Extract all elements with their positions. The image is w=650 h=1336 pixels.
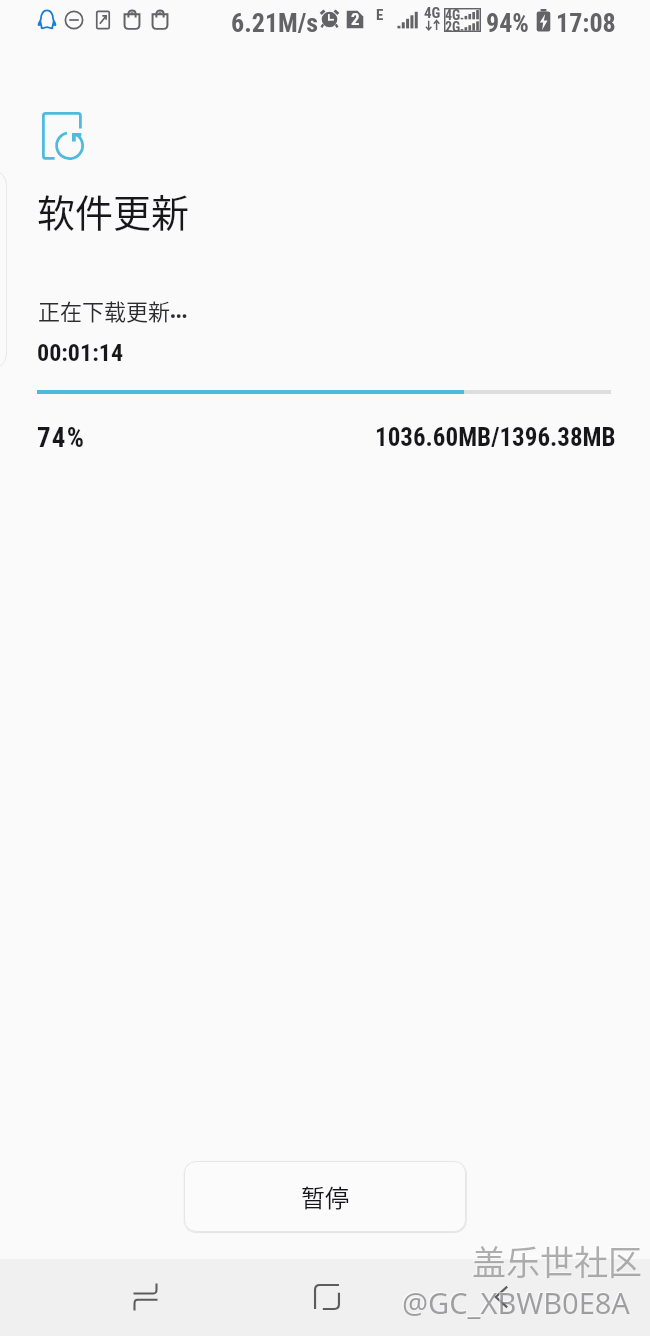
staticText: 暂停 [301, 1179, 349, 1214]
staticText: 17:08 [556, 8, 616, 38]
staticText: 6.21M/s [231, 8, 319, 38]
staticText: E [376, 6, 384, 24]
staticText: 1036.60MB/1396.38MB [375, 423, 616, 452]
button[interactable]: Recent apps [85, 1259, 205, 1336]
staticText: 4G [445, 7, 461, 23]
staticText: 4G [424, 4, 441, 22]
staticText: 00:01:14 [37, 339, 124, 367]
staticText: 正在下载更新 [38, 294, 171, 326]
staticText: 盖乐世社区 [472, 1236, 642, 1285]
staticText: 盖乐世社区 [471, 1235, 641, 1284]
staticText: 74% [37, 422, 86, 454]
button[interactable]: 暂停 [184, 1161, 466, 1232]
button[interactable]: Home [267, 1259, 387, 1336]
button[interactable]: Back [443, 1259, 563, 1336]
staticText: @GC_XBWB0E8A [402, 1283, 630, 1322]
staticText: 2 [351, 9, 360, 28]
staticText: 软件更新 [37, 183, 190, 238]
staticText: @GC_XBWB0E8A [401, 1282, 629, 1321]
staticText: 94% [486, 8, 529, 38]
staticText: 2G [445, 19, 461, 35]
